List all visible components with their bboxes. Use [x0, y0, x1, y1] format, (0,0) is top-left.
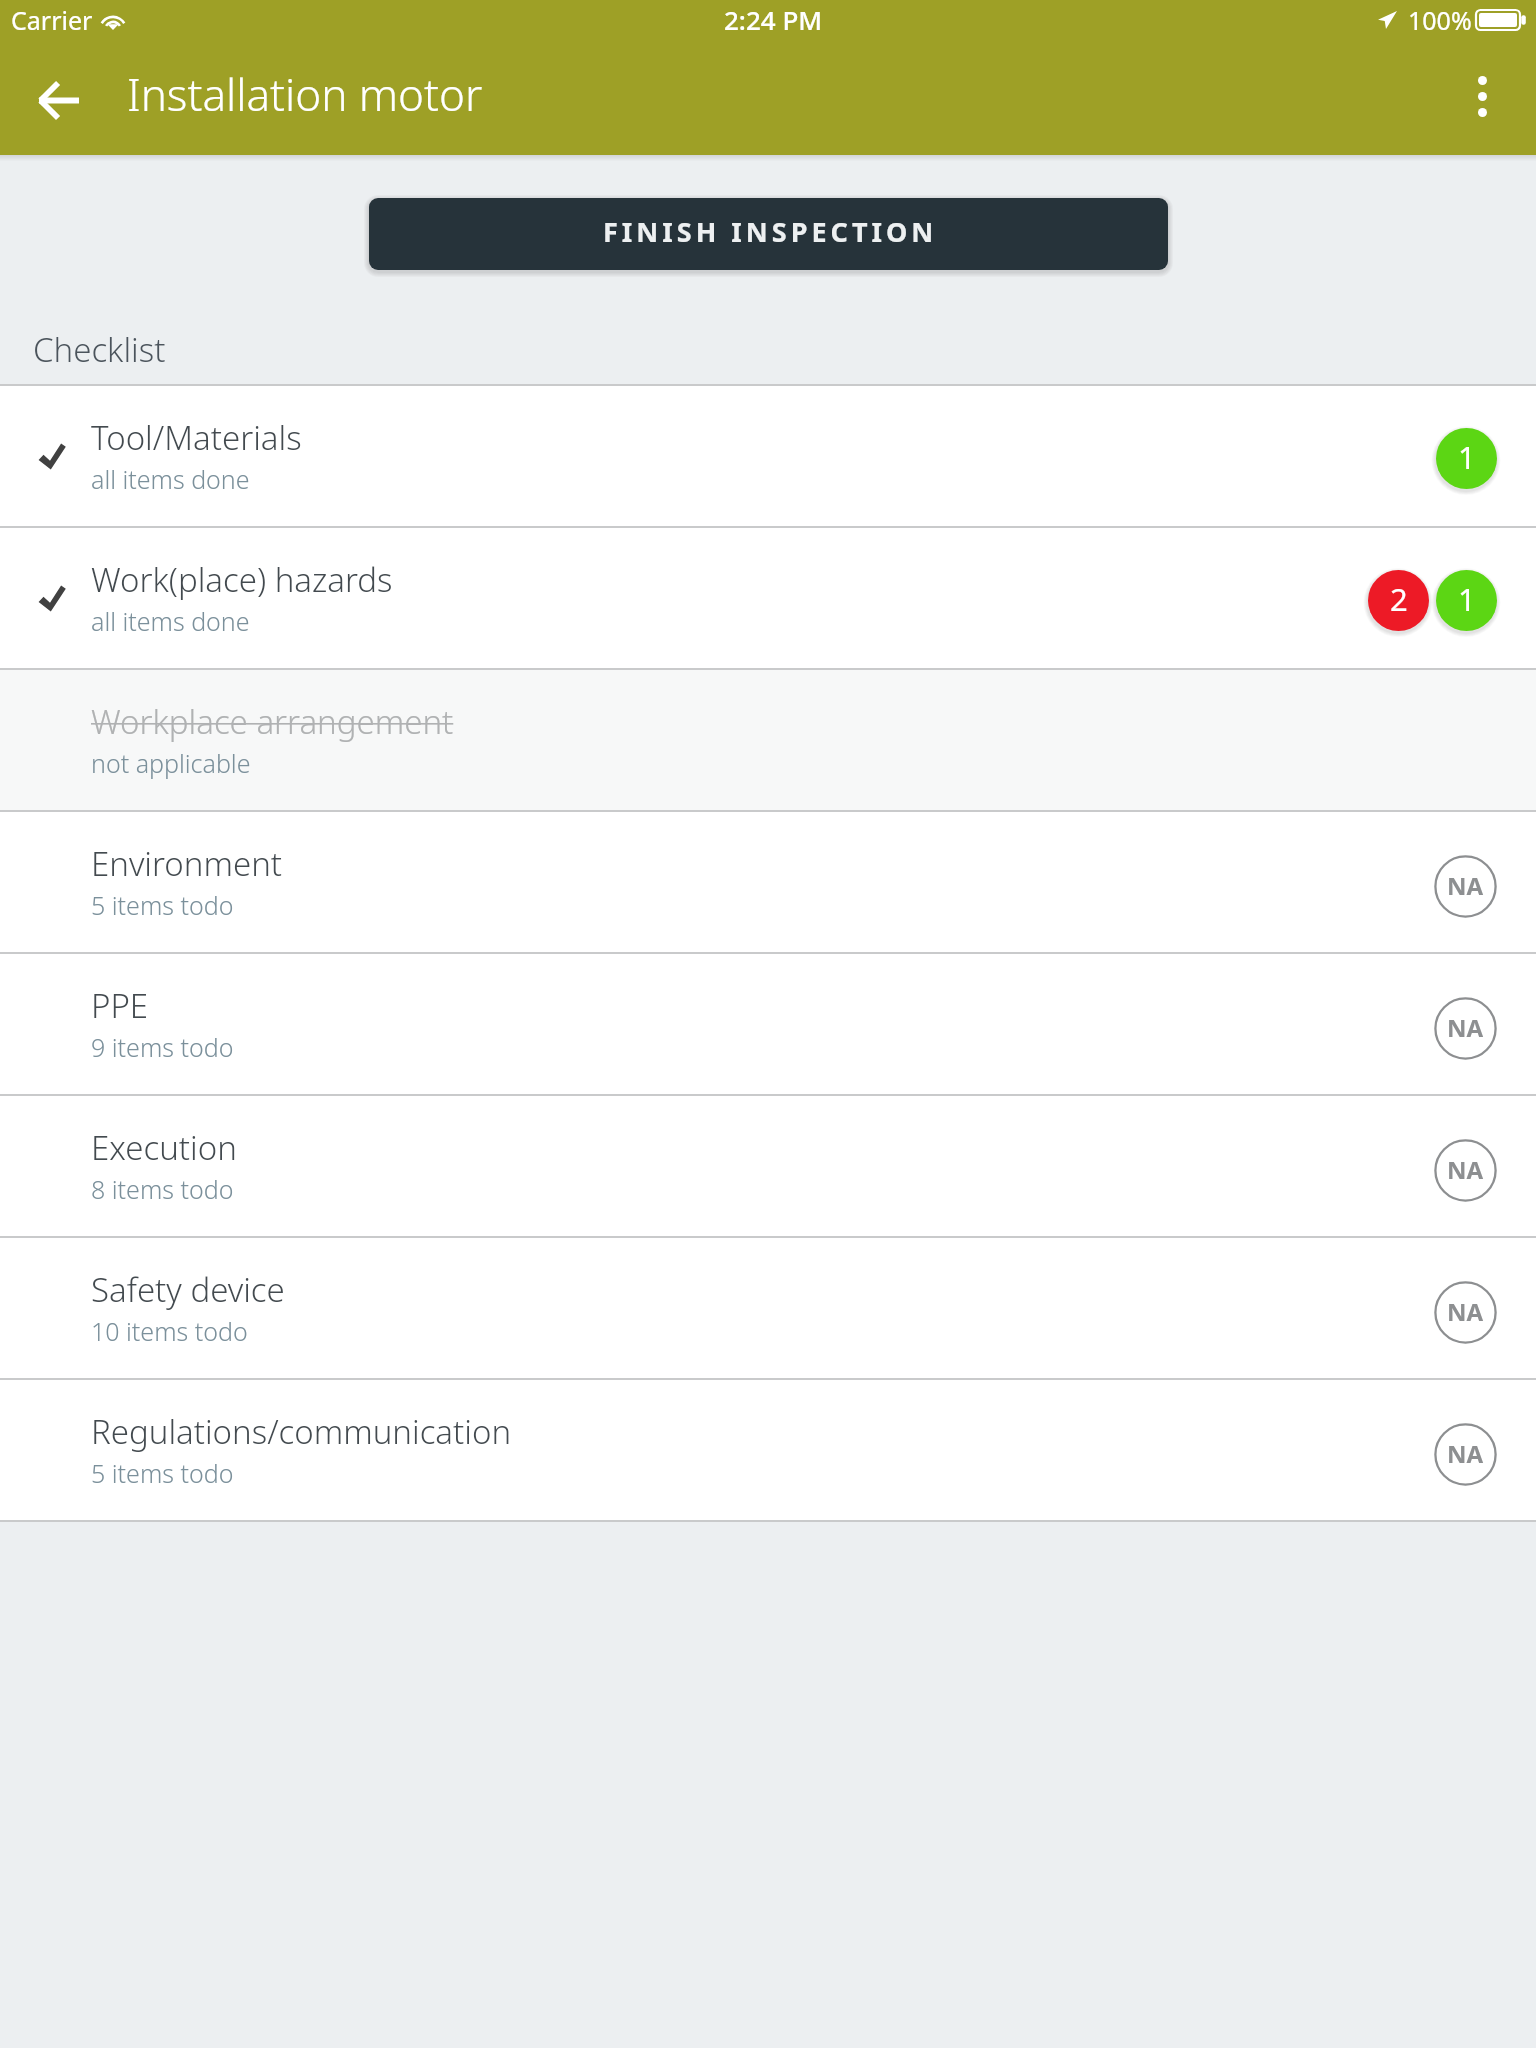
staticText: Work(place) hazards [91, 557, 393, 602]
button[interactable]: Tool/Materials [0, 386, 1536, 526]
staticText: Tool/Materials [91, 415, 302, 460]
staticText: 2 [1390, 578, 1408, 620]
button[interactable]: Safety device [0, 1238, 1536, 1378]
staticText: all items done [91, 462, 250, 496]
button[interactable]: Workplace arrangement [0, 670, 1536, 810]
staticText: 8 items todo [91, 1172, 234, 1206]
staticText: NA [1447, 1437, 1484, 1470]
button[interactable]: Back [14, 56, 102, 144]
staticText: Checklist [33, 327, 166, 372]
staticText: 5 items todo [91, 1456, 234, 1490]
staticText: 1 [1458, 578, 1476, 620]
staticText: FINISH INSPECTION [603, 213, 938, 250]
staticText: all items done [91, 604, 250, 638]
staticText: Carrier [11, 3, 93, 37]
staticText: Installation motor [127, 64, 483, 124]
staticText: Execution [91, 1125, 237, 1170]
staticText: Regulations/communication [91, 1409, 512, 1454]
staticText: Workplace arrangement [91, 699, 454, 744]
button[interactable]: Environment [0, 812, 1536, 952]
staticText: not applicable [91, 746, 251, 780]
staticText: 1 [1458, 436, 1476, 478]
staticText: NA [1447, 869, 1484, 902]
staticText: NA [1447, 1011, 1484, 1044]
staticText: 5 items todo [91, 888, 234, 922]
staticText: Environment [91, 841, 283, 886]
button[interactable]: Work(place) hazards [0, 528, 1536, 668]
staticText: NA [1447, 1295, 1484, 1328]
staticText: NA [1447, 1153, 1484, 1186]
staticText: 100% [1408, 3, 1472, 37]
staticText: PPE [91, 983, 149, 1028]
staticText: 10 items todo [91, 1314, 248, 1348]
staticText: 9 items todo [91, 1030, 234, 1064]
button[interactable]: Execution [0, 1096, 1536, 1236]
staticText: Safety device [91, 1267, 285, 1312]
button[interactable]: FINISH INSPECTION [369, 198, 1168, 270]
button[interactable]: Regulations/communication [0, 1380, 1536, 1520]
button[interactable]: PPE [0, 954, 1536, 1094]
staticText: 2:24 PM [724, 2, 823, 37]
button[interactable]: More options [1442, 62, 1518, 138]
